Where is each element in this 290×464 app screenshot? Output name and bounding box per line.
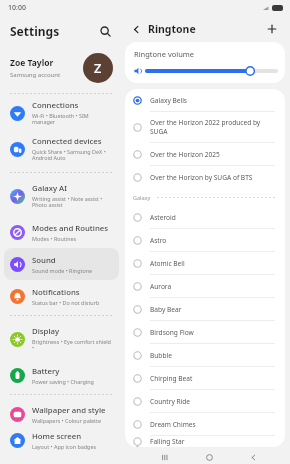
button[interactable]: Birdsong Flow bbox=[125, 321, 285, 343]
staticText: Sound mode • Ringtone bbox=[32, 267, 93, 274]
staticText: Bubble bbox=[150, 351, 172, 360]
staticText: Home screen bbox=[32, 431, 82, 442]
staticText: Galaxy bbox=[133, 194, 151, 201]
staticText: Dream Chimes bbox=[150, 420, 196, 429]
button[interactable]: Zoe Taylor bbox=[0, 46, 123, 90]
staticText: Battery bbox=[32, 366, 60, 377]
button[interactable]: Atomic Bell bbox=[125, 252, 285, 274]
staticText: Birdsong Flow bbox=[150, 328, 194, 337]
button[interactable]: Aurora bbox=[125, 275, 285, 297]
button[interactable]: Ringtone volume bbox=[125, 42, 285, 83]
button[interactable]: Battery bbox=[4, 359, 119, 391]
button[interactable]: Wallpaper and style bbox=[4, 398, 119, 430]
staticText: Wallpapers • Colour palette bbox=[32, 417, 102, 424]
button[interactable]: Bubble bbox=[125, 344, 285, 366]
staticText: 10:00 bbox=[8, 3, 26, 13]
button[interactable]: Connected devices bbox=[4, 129, 119, 169]
staticText: Wi-Fi • Bluetooth • SIM manager bbox=[32, 112, 113, 126]
staticText: Asteroid bbox=[150, 213, 176, 222]
staticText: Status bar • Do not disturb bbox=[32, 299, 100, 306]
button[interactable]: Astro bbox=[125, 229, 285, 251]
button[interactable]: Country Ride bbox=[125, 390, 285, 412]
staticText: Astro bbox=[150, 236, 167, 245]
staticText: Aurora bbox=[150, 282, 172, 291]
button[interactable]: Home screen bbox=[4, 430, 119, 450]
button[interactable]: Galaxy Bells bbox=[125, 89, 285, 111]
button[interactable]: Notifications bbox=[4, 280, 119, 312]
staticText: Atomic Bell bbox=[150, 259, 185, 268]
button[interactable]: Dream Chimes bbox=[125, 413, 285, 435]
button[interactable]: Back bbox=[246, 450, 260, 464]
staticText: Falling Star bbox=[150, 437, 185, 446]
button[interactable]: Home bbox=[202, 450, 216, 464]
staticText: Z bbox=[94, 59, 102, 77]
staticText: Sound bbox=[32, 255, 56, 266]
staticText: Display bbox=[32, 326, 60, 337]
staticText: Connected devices bbox=[32, 136, 102, 147]
staticText: Galaxy AI bbox=[32, 183, 67, 194]
button[interactable]: Recents bbox=[158, 450, 172, 464]
button[interactable]: Falling Star bbox=[125, 436, 285, 447]
button[interactable]: Chirping Beat bbox=[125, 367, 285, 389]
staticText: Over the Horizon 2022 produced by SUGA o… bbox=[150, 118, 275, 136]
staticText: Over the Horizon 2025 bbox=[150, 150, 220, 159]
button[interactable]: Sound bbox=[4, 248, 119, 280]
staticText: Quick Share • Samsung DeX • Android Auto bbox=[32, 148, 106, 162]
staticText: Modes • Routines bbox=[32, 235, 77, 242]
button[interactable]: Connections bbox=[4, 97, 119, 129]
staticText: Notifications bbox=[32, 287, 80, 298]
button[interactable]: Search bbox=[95, 21, 115, 41]
staticText: Over the Horizon by SUGA of BTS bbox=[150, 173, 253, 182]
staticText: Modes and Routines bbox=[32, 223, 109, 234]
button[interactable]: Over the Horizon 2022 produced by SUGA o… bbox=[125, 112, 285, 142]
staticText: Settings bbox=[10, 23, 60, 39]
staticText: Galaxy Bells bbox=[150, 96, 188, 105]
staticText: Layout • App icon badges bbox=[32, 443, 97, 450]
staticText: Power saving • Charging bbox=[32, 378, 94, 385]
staticText: Ringtone volume bbox=[134, 49, 195, 59]
staticText: Wallpaper and style bbox=[32, 405, 106, 416]
button[interactable]: Modes and Routines bbox=[4, 216, 119, 248]
staticText: Writing assist • Note assist • Photo ass… bbox=[32, 195, 103, 209]
staticText: Connections bbox=[32, 100, 79, 111]
staticText: Brightness • Eye comfort shield • Naviga… bbox=[32, 338, 113, 352]
button[interactable]: Galaxy AI bbox=[4, 176, 119, 216]
staticText: Chirping Beat bbox=[150, 374, 193, 383]
staticText: Ringtone bbox=[148, 22, 196, 36]
staticText: Zoe Taylor bbox=[10, 57, 54, 69]
staticText: Baby Bear bbox=[150, 305, 182, 314]
staticText: Country Ride bbox=[150, 397, 191, 406]
button[interactable]: Over the Horizon by SUGA of BTS bbox=[125, 166, 285, 188]
button[interactable]: Baby Bear bbox=[125, 298, 285, 320]
button[interactable]: Asteroid bbox=[125, 206, 285, 228]
button[interactable]: Display bbox=[4, 319, 119, 359]
button[interactable]: Back bbox=[127, 20, 145, 38]
button[interactable]: Over the Horizon 2025 bbox=[125, 143, 285, 165]
button[interactable]: Add ringtone bbox=[263, 20, 281, 38]
staticText: Samsung account bbox=[10, 71, 61, 79]
